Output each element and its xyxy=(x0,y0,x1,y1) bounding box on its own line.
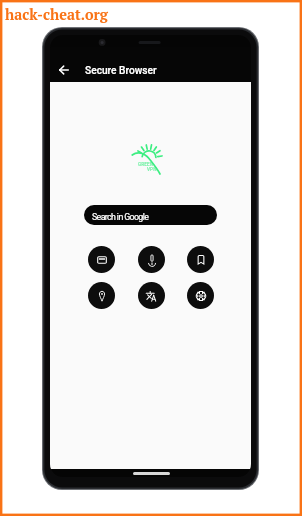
staticText: Secure Browser xyxy=(85,65,157,77)
staticText: hack-cheat.org xyxy=(5,5,108,24)
staticText: Search in Google xyxy=(92,212,149,222)
button[interactable]: Bookmarks xyxy=(187,246,214,273)
staticText: VPN xyxy=(147,167,157,172)
button[interactable]: Back xyxy=(52,58,75,81)
button[interactable]: Maps xyxy=(88,282,115,309)
button[interactable]: Settings xyxy=(187,282,214,309)
button[interactable]: Translate xyxy=(138,282,165,309)
button[interactable]: Search in Google xyxy=(84,205,217,225)
button[interactable]: Voice search xyxy=(138,246,165,273)
staticText: GREEN xyxy=(138,162,153,167)
button[interactable]: News xyxy=(88,246,115,273)
